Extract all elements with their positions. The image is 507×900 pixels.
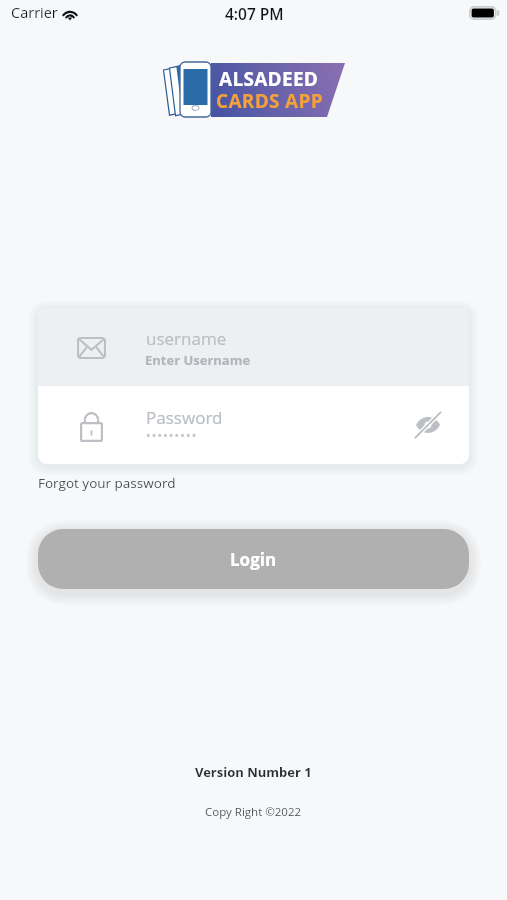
button[interactable]: Show password bbox=[402, 397, 454, 453]
staticText: Version Number 1 bbox=[195, 763, 312, 781]
staticText: CARDS APP bbox=[216, 88, 323, 114]
staticText: username bbox=[146, 327, 227, 350]
button[interactable]: username bbox=[38, 308, 469, 386]
staticText: ••••••••• bbox=[146, 427, 198, 443]
button[interactable]: Password bbox=[38, 386, 469, 464]
staticText: Carrier bbox=[11, 3, 58, 23]
button[interactable]: Login bbox=[38, 529, 469, 589]
staticText: ALSADEED bbox=[219, 66, 319, 92]
staticText: Password bbox=[146, 406, 223, 429]
staticText: Copy Right ©2022 bbox=[205, 804, 302, 820]
staticText: Login bbox=[230, 548, 277, 571]
staticText: Forgot your password bbox=[38, 474, 176, 492]
staticText: 4:07 PM bbox=[225, 3, 284, 24]
button[interactable]: Forgot your password bbox=[38, 471, 176, 495]
staticText: Enter Username bbox=[145, 351, 251, 369]
